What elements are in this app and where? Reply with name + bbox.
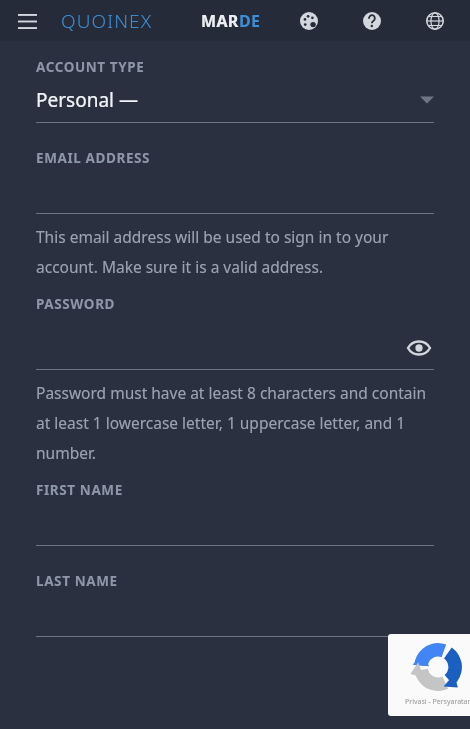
staticText: This email address will be used to sign … <box>36 226 434 277</box>
button[interactable]: QUOINEX <box>61 8 153 34</box>
staticText: EMAIL ADDRESS <box>36 149 151 167</box>
button[interactable]: Show password <box>404 333 434 363</box>
button[interactable]: Help <box>356 5 388 37</box>
staticText: FIRST NAME <box>36 481 123 499</box>
button[interactable]: Theme <box>293 5 325 37</box>
staticText: ACCOUNT TYPE <box>36 58 145 76</box>
staticText: QUOINEX <box>61 8 153 34</box>
staticText: LAST NAME <box>36 572 118 590</box>
staticText: DE <box>239 10 261 32</box>
button[interactable]: MAR <box>201 10 261 32</box>
button[interactable]: reCAPTCHA privacy and terms <box>388 634 470 716</box>
staticText: PASSWORD <box>36 295 116 313</box>
staticText: MAR <box>201 10 239 32</box>
button[interactable]: Menu <box>11 5 43 37</box>
staticText: Password must have at least 8 characters… <box>36 382 434 463</box>
staticText: Personal — Registered account is i… <box>36 87 228 113</box>
button[interactable]: Personal — Registered account is i… <box>36 87 434 113</box>
button[interactable]: Language <box>419 5 451 37</box>
staticText: Privasi - Persyaratan <box>405 697 470 707</box>
